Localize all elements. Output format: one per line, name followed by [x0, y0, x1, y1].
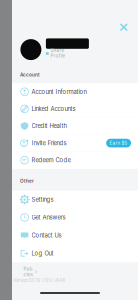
button[interactable]: Settings: [12, 191, 138, 208]
staticText: Other: [20, 178, 34, 184]
button[interactable]: Redeem Code: [12, 152, 138, 169]
staticText: Redeem Code: [32, 157, 71, 164]
button[interactable]: Credit Health: [12, 117, 138, 134]
staticText: Get Answers: [32, 214, 66, 221]
button[interactable]: Close: [118, 21, 130, 33]
staticText: Linked Accounts: [32, 105, 76, 112]
staticText: Log Out: [32, 250, 54, 257]
staticText: Earn $5: [110, 140, 128, 146]
staticText: Version 3.0.16 (735) v648: [13, 278, 65, 283]
staticText: Credit Health: [32, 122, 67, 129]
button[interactable]: Get Answers: [12, 208, 138, 226]
staticText: Account: [20, 72, 40, 78]
button[interactable]: Linked Accounts: [12, 100, 138, 117]
button[interactable]: Account Information: [12, 83, 138, 100]
staticText: Invite Friends: [32, 139, 67, 147]
button[interactable]: Policies: [23, 269, 38, 275]
staticText: Settings: [32, 196, 54, 203]
button[interactable]: Log Out: [12, 244, 138, 262]
staticText: Share Profile: [50, 48, 65, 59]
staticText: Policies: [23, 266, 33, 277]
button[interactable]: Contact Us: [12, 226, 138, 244]
staticText: Contact Us: [32, 232, 62, 239]
button[interactable]: Share Profile: [46, 50, 70, 56]
button[interactable]: Invite Friends: [12, 134, 138, 152]
staticText: Account Information: [32, 88, 87, 95]
